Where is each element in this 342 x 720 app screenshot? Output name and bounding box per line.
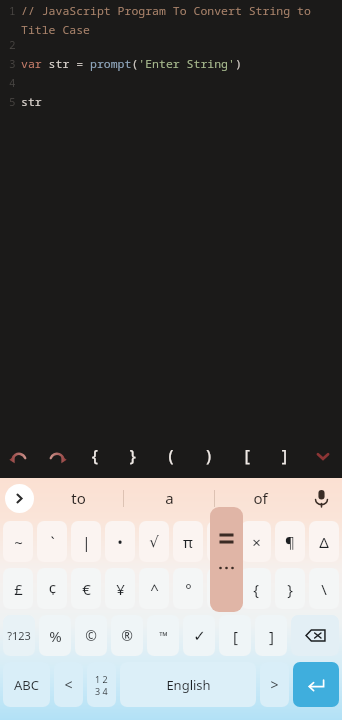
staticText: str	[21, 94, 42, 110]
staticText: =	[218, 532, 227, 552]
staticText: ®	[121, 626, 133, 645]
staticText: <	[64, 675, 73, 694]
staticText: )	[204, 445, 214, 467]
staticText: %	[49, 626, 62, 646]
button[interactable]: |	[71, 521, 101, 562]
staticText: }	[287, 579, 293, 599]
staticText: 4	[9, 75, 16, 90]
button[interactable]: ×	[241, 521, 271, 562]
button[interactable]: of	[215, 478, 305, 518]
button[interactable]: €	[71, 568, 101, 609]
button[interactable]: (	[152, 434, 190, 478]
staticText: 2	[9, 37, 16, 52]
button[interactable]: Voice input	[305, 482, 337, 514]
staticText: £	[14, 579, 23, 599]
button[interactable]: <	[54, 662, 83, 707]
staticText: €	[82, 579, 91, 599]
button[interactable]: `	[37, 521, 67, 562]
staticText: ©	[85, 626, 97, 645]
button[interactable]: £	[3, 568, 33, 609]
button[interactable]: •	[105, 521, 135, 562]
button[interactable]: }	[275, 568, 305, 609]
staticText: |	[82, 532, 91, 552]
staticText: ^	[150, 579, 159, 599]
staticText: var str = prompt('Enter String')	[21, 56, 242, 72]
staticText: >	[270, 675, 279, 694]
staticText: }	[128, 445, 138, 467]
button[interactable]: {	[241, 568, 271, 609]
button[interactable]: ±	[207, 568, 237, 609]
button[interactable]: ¶	[275, 521, 305, 562]
staticText: ™	[159, 628, 168, 643]
button[interactable]: ?123	[3, 615, 35, 656]
button[interactable]: {	[76, 434, 114, 478]
staticText: ]	[269, 626, 274, 646]
staticText: √	[149, 533, 159, 550]
button[interactable]: [	[219, 615, 251, 656]
staticText: [	[233, 626, 238, 646]
button[interactable]: 1 2	[87, 662, 116, 707]
button[interactable]: [	[228, 434, 266, 478]
button[interactable]: \	[309, 568, 339, 609]
staticText: Δ	[319, 532, 329, 552]
staticText: // JavaScript Program To Convert String …	[21, 3, 342, 37]
button[interactable]: English	[120, 662, 256, 707]
staticText: ]	[280, 445, 290, 467]
button[interactable]: >	[260, 662, 289, 707]
staticText: °	[185, 579, 192, 599]
staticText: ×	[252, 532, 261, 552]
staticText: of	[253, 488, 268, 508]
staticText: ?123	[7, 628, 31, 643]
button[interactable]: ABC	[3, 662, 50, 707]
button[interactable]: Undo	[0, 434, 38, 478]
button[interactable]: to	[34, 478, 123, 518]
staticText: a	[165, 488, 174, 508]
button[interactable]: ¥	[105, 568, 135, 609]
staticText: 5	[9, 94, 16, 109]
button[interactable]: %	[39, 615, 71, 656]
staticText: {	[253, 579, 259, 599]
staticText: {	[90, 445, 100, 467]
button[interactable]: °	[173, 568, 203, 609]
staticText: 3	[9, 56, 16, 71]
staticText: `	[50, 532, 55, 552]
button[interactable]: ¢	[37, 568, 67, 609]
staticText: 1 2	[95, 673, 108, 685]
button[interactable]: =	[207, 521, 237, 562]
staticText: (	[166, 445, 176, 467]
button[interactable]: ^	[139, 568, 169, 609]
button[interactable]: π	[173, 521, 203, 562]
staticText: ¢	[48, 579, 57, 599]
button[interactable]: √	[139, 521, 169, 562]
staticText: ABC	[14, 676, 39, 694]
button[interactable]: ®	[111, 615, 143, 656]
button[interactable]: ©	[75, 615, 107, 656]
button[interactable]: a	[124, 478, 214, 518]
button[interactable]: ~	[3, 521, 33, 562]
staticText: \	[321, 579, 327, 599]
staticText: 3 4	[95, 685, 108, 697]
button[interactable]: Redo	[38, 434, 76, 478]
staticText: ✓	[193, 627, 206, 644]
staticText: to	[71, 488, 86, 508]
button[interactable]: ]	[255, 615, 287, 656]
button[interactable]: Hide toolbar	[304, 434, 342, 478]
staticText: ~	[14, 532, 23, 552]
button[interactable]: ✓	[183, 615, 215, 656]
staticText: [	[242, 445, 252, 467]
button[interactable]: Backspace	[291, 615, 339, 656]
button[interactable]: Enter	[293, 662, 339, 707]
button[interactable]: Δ	[309, 521, 339, 562]
button[interactable]: ™	[147, 615, 179, 656]
staticText: English	[166, 676, 211, 694]
staticText: π	[183, 532, 193, 552]
button[interactable]: }	[114, 434, 152, 478]
staticText: 1	[9, 3, 16, 18]
staticText: ¶	[285, 532, 295, 552]
button[interactable]: )	[190, 434, 228, 478]
button[interactable]: ]	[266, 434, 304, 478]
staticText: •	[117, 532, 123, 552]
staticText: ¥	[116, 579, 125, 599]
button[interactable]: Expand toolbar	[5, 484, 34, 513]
